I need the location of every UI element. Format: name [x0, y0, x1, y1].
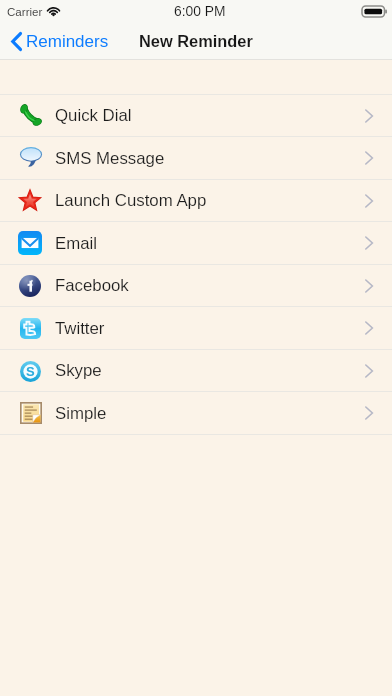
staticText: SMS Message [55, 149, 165, 168]
button[interactable]: Back to Reminders [0, 26, 119, 57]
button[interactable]: S [0, 350, 392, 391]
staticText: Simple [55, 404, 107, 423]
button[interactable]: Quick Dial [0, 95, 392, 136]
staticText: Reminders [26, 32, 109, 51]
staticText: Launch Custom App [55, 191, 207, 210]
button[interactable]: SMS Message [0, 137, 392, 179]
button[interactable]: Launch Custom App [0, 180, 392, 221]
staticText: Carrier [7, 5, 43, 18]
button[interactable]: Twitter [0, 307, 392, 349]
staticText: 6:00 PM [174, 4, 226, 19]
staticText: Email [55, 234, 98, 253]
staticText: Facebook [55, 276, 129, 295]
staticText: Quick Dial [55, 106, 132, 125]
staticText: New Reminder [139, 32, 253, 50]
button[interactable]: Facebook [0, 265, 392, 306]
staticText: S [26, 364, 35, 379]
button[interactable]: Simple [0, 392, 392, 434]
staticText: Skype [55, 361, 102, 380]
button[interactable]: Email [0, 222, 392, 264]
staticText: Twitter [55, 319, 105, 338]
